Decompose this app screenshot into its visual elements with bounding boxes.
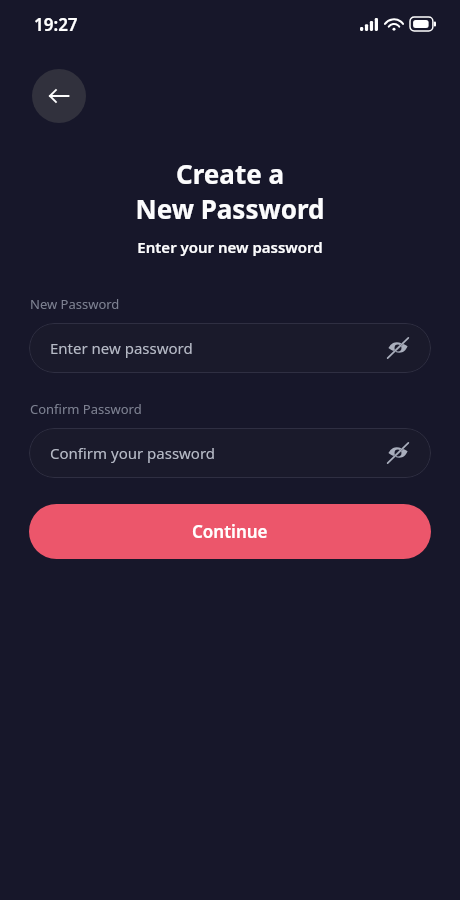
staticText: Enter new password	[50, 338, 193, 358]
staticText: New Password	[30, 295, 120, 313]
staticText: New Password	[0, 191, 460, 226]
staticText: Confirm Password	[30, 400, 142, 418]
staticText: 19:27	[34, 13, 78, 36]
staticText: Enter your new password	[0, 237, 460, 257]
staticText: Confirm your password	[50, 443, 216, 463]
button[interactable]: Continue	[29, 504, 431, 559]
button[interactable]: Show password	[385, 440, 411, 466]
button[interactable]: Confirm your password	[29, 428, 431, 478]
staticText: Create a	[0, 156, 460, 191]
button[interactable]: Enter new password	[29, 323, 431, 373]
button[interactable]: Show password	[385, 335, 411, 361]
staticText: Continue	[192, 520, 268, 543]
button[interactable]: Back	[32, 69, 86, 123]
